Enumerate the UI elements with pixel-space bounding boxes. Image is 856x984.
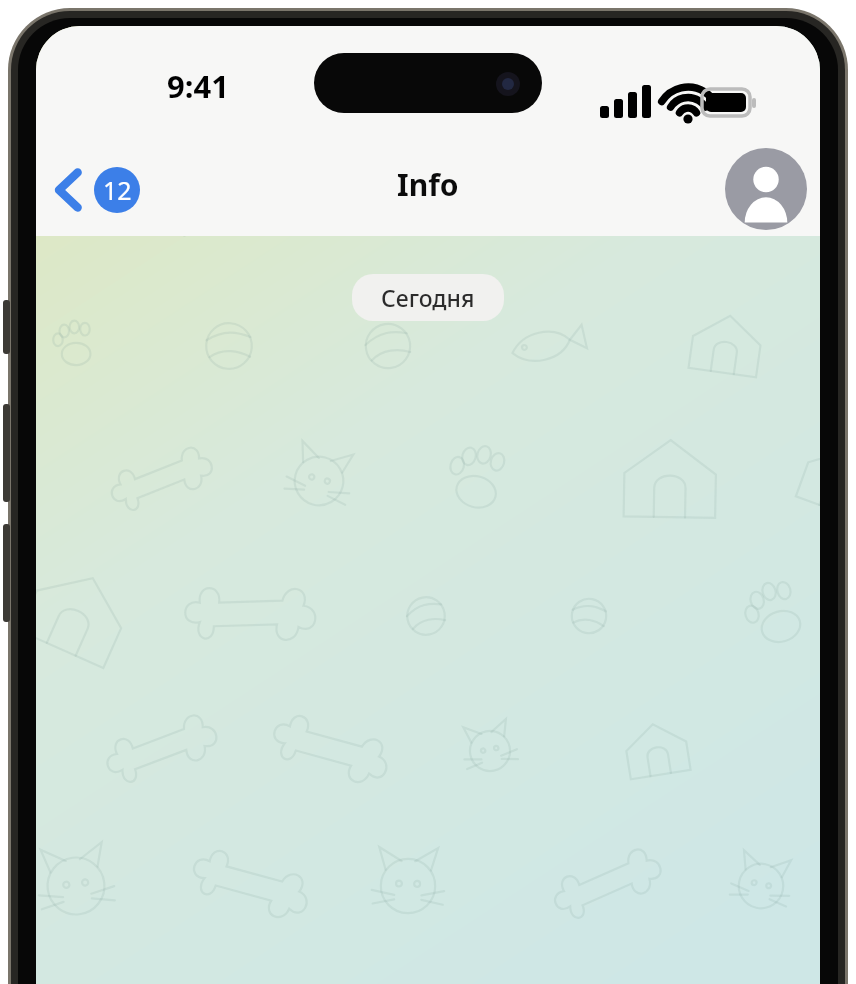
staticText: Info <box>397 164 459 205</box>
staticText: 12 <box>103 173 132 207</box>
button[interactable]: Profile <box>725 148 807 230</box>
staticText: 9:41 <box>167 65 229 107</box>
button[interactable]: Сегодня <box>352 274 504 321</box>
staticText: Сегодня <box>381 282 475 313</box>
button[interactable]: Back, 12 <box>42 154 150 226</box>
